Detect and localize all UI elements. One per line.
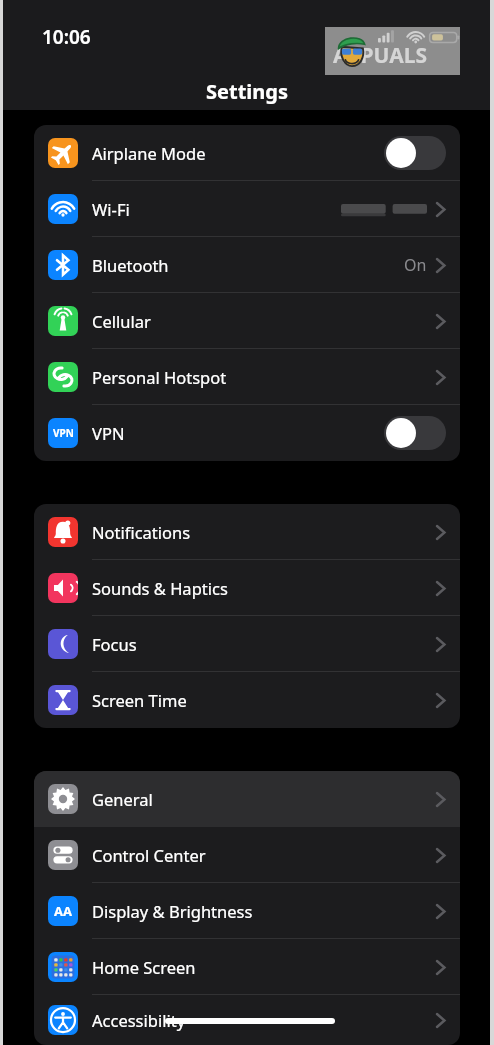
button[interactable]: Focus	[34, 616, 460, 672]
staticText: Notifications	[92, 521, 435, 543]
button[interactable]: Wi-Fi	[34, 181, 460, 237]
button[interactable]: Sounds & Haptics	[34, 560, 460, 616]
staticText: Home Screen	[92, 956, 435, 978]
staticText: Personal Hotspot	[92, 366, 435, 388]
staticText: Airplane Mode	[92, 142, 384, 164]
button[interactable]: VPN	[34, 405, 460, 461]
staticText: Cellular	[92, 310, 435, 332]
button[interactable]: Airplane Mode	[34, 125, 460, 181]
button[interactable]: Accessibility	[34, 995, 460, 1045]
staticText: General	[92, 788, 435, 810]
staticText: VPN	[92, 422, 384, 444]
button[interactable]: Personal Hotspot	[34, 349, 460, 405]
staticText: VPN	[53, 426, 74, 440]
staticText: Wi-Fi	[92, 198, 341, 220]
staticText: AA	[54, 902, 72, 920]
staticText: Bluetooth	[92, 254, 404, 276]
staticText: Display & Brightness	[92, 900, 435, 922]
button[interactable]: Cellular	[34, 293, 460, 349]
button[interactable]: Toggle off	[384, 136, 446, 170]
button[interactable]: Home Screen	[34, 939, 460, 995]
staticText: On	[404, 254, 427, 276]
staticText: Control Center	[92, 844, 435, 866]
staticText: Focus	[92, 633, 435, 655]
button[interactable]: AA	[34, 883, 460, 939]
button[interactable]: Screen Time	[34, 672, 460, 728]
button[interactable]: Control Center	[34, 827, 460, 883]
button[interactable]: Toggle off	[384, 416, 446, 450]
button[interactable]: General	[34, 771, 460, 827]
staticText: Sounds & Haptics	[92, 577, 435, 599]
button[interactable]: Bluetooth	[34, 237, 460, 293]
staticText: Screen Time	[92, 689, 435, 711]
staticText: Settings	[206, 78, 288, 105]
button[interactable]: Notifications	[34, 504, 460, 560]
staticText: 10:06	[42, 24, 91, 50]
staticText: APPUALS	[333, 41, 428, 70]
staticText: Accessibility	[92, 1009, 435, 1031]
